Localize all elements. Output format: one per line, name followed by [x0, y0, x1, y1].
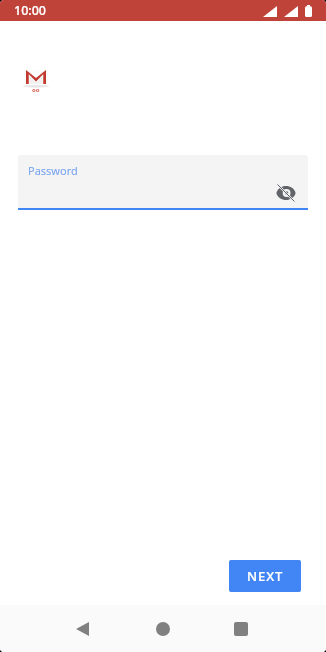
button[interactable]: Home: [139, 605, 187, 652]
button[interactable]: NEXT: [229, 560, 301, 592]
button[interactable]: Password: [18, 155, 308, 208]
staticText: 10:00: [14, 2, 47, 19]
button[interactable]: Show password: [274, 181, 297, 204]
staticText: oo: [32, 86, 40, 94]
button[interactable]: Back: [58, 605, 106, 652]
button[interactable]: Recent apps: [217, 605, 265, 652]
staticText: NEXT: [247, 567, 284, 585]
staticText: Password: [28, 163, 78, 178]
